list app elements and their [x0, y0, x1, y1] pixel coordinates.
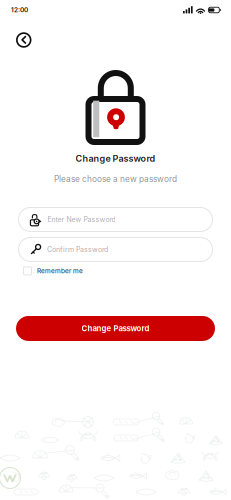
staticText: Enter New Password — [47, 215, 115, 224]
button[interactable]: Enter New Password — [18, 207, 213, 232]
button[interactable]: Confirm Password — [18, 237, 213, 262]
staticText: Please choose a new password — [54, 174, 177, 184]
button[interactable]: Change Password — [16, 316, 215, 341]
staticText: Confirm Password — [47, 245, 108, 254]
staticText: Remember me — [37, 267, 83, 275]
staticText: Change Password — [81, 324, 149, 333]
staticText: Change Password — [75, 153, 155, 164]
button[interactable]: Remember me — [0, 263, 231, 279]
staticText: 12:00 — [11, 6, 28, 14]
button[interactable]: Back — [11, 27, 36, 53]
